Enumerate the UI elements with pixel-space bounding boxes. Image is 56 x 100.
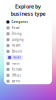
staticText: business type bbox=[10, 10, 45, 17]
button[interactable]: Travel bbox=[6, 55, 23, 60]
staticText: Travel bbox=[13, 56, 21, 59]
staticText: Offices bbox=[12, 74, 21, 77]
button[interactable]: Dining bbox=[4, 31, 52, 37]
button[interactable]: Retail bbox=[4, 25, 52, 31]
staticText: Rentals bbox=[12, 68, 22, 71]
button[interactable]: Transit bbox=[4, 61, 52, 66]
button[interactable]: Lodging bbox=[4, 37, 52, 43]
staticText: Dining bbox=[12, 32, 22, 35]
button[interactable]: Events bbox=[4, 78, 52, 84]
button[interactable]: Categories bbox=[4, 19, 52, 25]
staticText: Events bbox=[12, 79, 20, 83]
button[interactable]: Schools bbox=[4, 48, 52, 54]
button[interactable]: Rentals bbox=[4, 66, 52, 72]
staticText: Categories bbox=[12, 20, 28, 24]
staticText: Retail bbox=[12, 26, 20, 30]
staticText: Transit bbox=[12, 62, 20, 65]
staticText: Lodging bbox=[12, 38, 24, 41]
button[interactable]: Health bbox=[4, 43, 52, 48]
staticText: Explore by bbox=[15, 3, 41, 10]
button[interactable]: Offices bbox=[4, 72, 52, 78]
staticText: Health bbox=[12, 44, 21, 47]
staticText: Schools bbox=[12, 50, 22, 53]
